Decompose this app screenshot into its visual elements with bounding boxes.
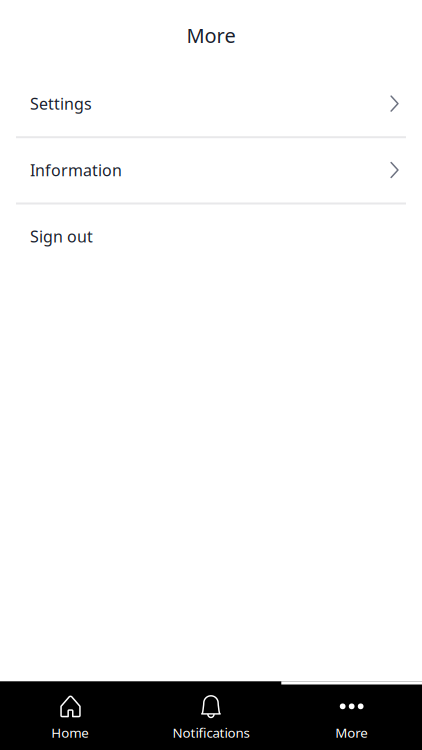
staticText: Sign out xyxy=(30,226,93,247)
staticText: Information xyxy=(30,159,122,181)
staticText: Settings xyxy=(30,93,92,114)
button[interactable]: Information xyxy=(0,137,422,203)
button[interactable]: More xyxy=(281,681,422,750)
staticText: More xyxy=(335,724,368,741)
button[interactable]: Home xyxy=(0,681,141,750)
button[interactable]: Notifications xyxy=(141,681,281,750)
staticText: More xyxy=(186,22,235,48)
staticText: Notifications xyxy=(172,724,249,741)
button[interactable]: Settings xyxy=(0,70,422,137)
button[interactable]: Sign out xyxy=(0,203,422,270)
staticText: Home xyxy=(51,724,89,741)
